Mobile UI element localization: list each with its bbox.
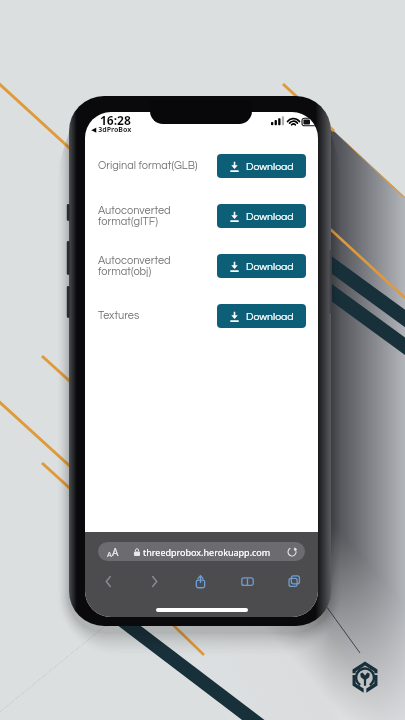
staticText: 16:28 <box>100 112 131 128</box>
staticText: Download <box>246 211 294 222</box>
staticText: ◀ 3dProBox <box>91 125 132 135</box>
staticText: Download <box>246 311 294 322</box>
button[interactable]: Download <box>217 254 306 278</box>
staticText: format(gITF) <box>98 216 158 227</box>
other: Reload <box>287 547 297 557</box>
button[interactable]: Download <box>217 304 306 328</box>
button[interactable]: Download <box>217 154 306 178</box>
staticText: A <box>112 545 119 559</box>
staticText: Textures <box>98 310 140 321</box>
staticText: A <box>107 549 112 559</box>
staticText: Download <box>246 161 294 172</box>
button[interactable]: Tabs <box>271 569 318 593</box>
button[interactable]: Download <box>217 204 306 228</box>
staticText: format(obj) <box>98 266 152 277</box>
button[interactable]: Share <box>177 569 224 593</box>
button[interactable]: Forward <box>131 569 177 593</box>
button[interactable]: A <box>98 542 305 561</box>
staticText: Autoconverted <box>98 255 171 266</box>
button[interactable]: Bookmarks <box>224 569 271 593</box>
staticText: Original format(GLB) <box>98 160 198 171</box>
button[interactable]: Back <box>85 569 131 593</box>
staticText: Download <box>246 261 294 272</box>
staticText: Autoconverted <box>98 205 171 216</box>
staticText: threedprobox.herokuapp.com <box>143 546 271 558</box>
